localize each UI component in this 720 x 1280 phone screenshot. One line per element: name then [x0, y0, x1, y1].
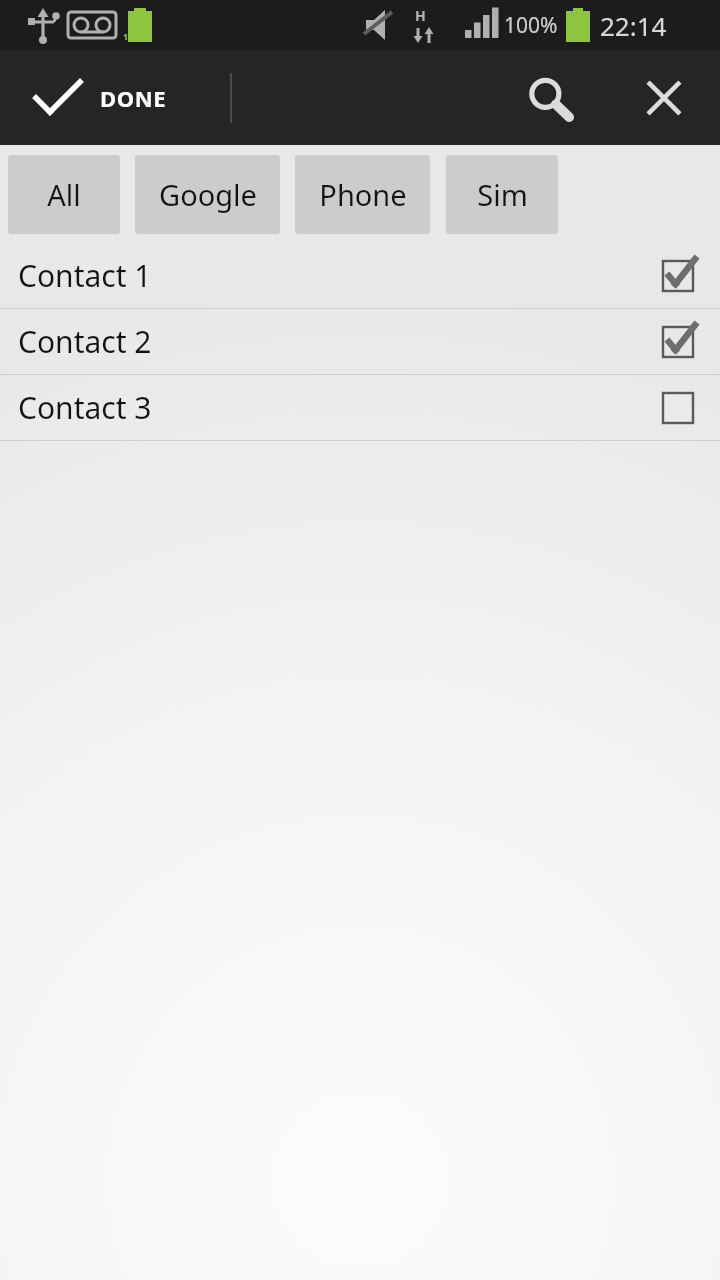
staticText: All	[47, 175, 81, 214]
staticText: 22:14	[600, 8, 667, 43]
staticText: H	[415, 6, 426, 25]
staticText: Contact 2	[18, 321, 152, 362]
button[interactable]: Google	[135, 155, 280, 234]
button[interactable]: Contact 2	[0, 309, 720, 374]
button[interactable]: DONE	[0, 50, 230, 145]
staticText: Sim	[477, 175, 528, 214]
staticText: Phone	[319, 175, 407, 214]
button[interactable]: Contact 3	[0, 375, 720, 440]
staticText: 100%	[504, 11, 558, 40]
staticText: DONE	[100, 83, 167, 113]
button[interactable]: Close	[620, 50, 708, 145]
button[interactable]: Sim	[446, 155, 558, 234]
staticText: Google	[159, 175, 257, 214]
staticText: Contact 1	[18, 255, 152, 296]
button[interactable]: All	[8, 155, 120, 234]
button[interactable]: Search	[505, 50, 593, 145]
button[interactable]: Phone	[295, 155, 430, 234]
staticText: Contact 3	[18, 387, 152, 428]
button[interactable]: Contact 1	[0, 243, 720, 308]
staticText: 100%	[123, 30, 147, 42]
